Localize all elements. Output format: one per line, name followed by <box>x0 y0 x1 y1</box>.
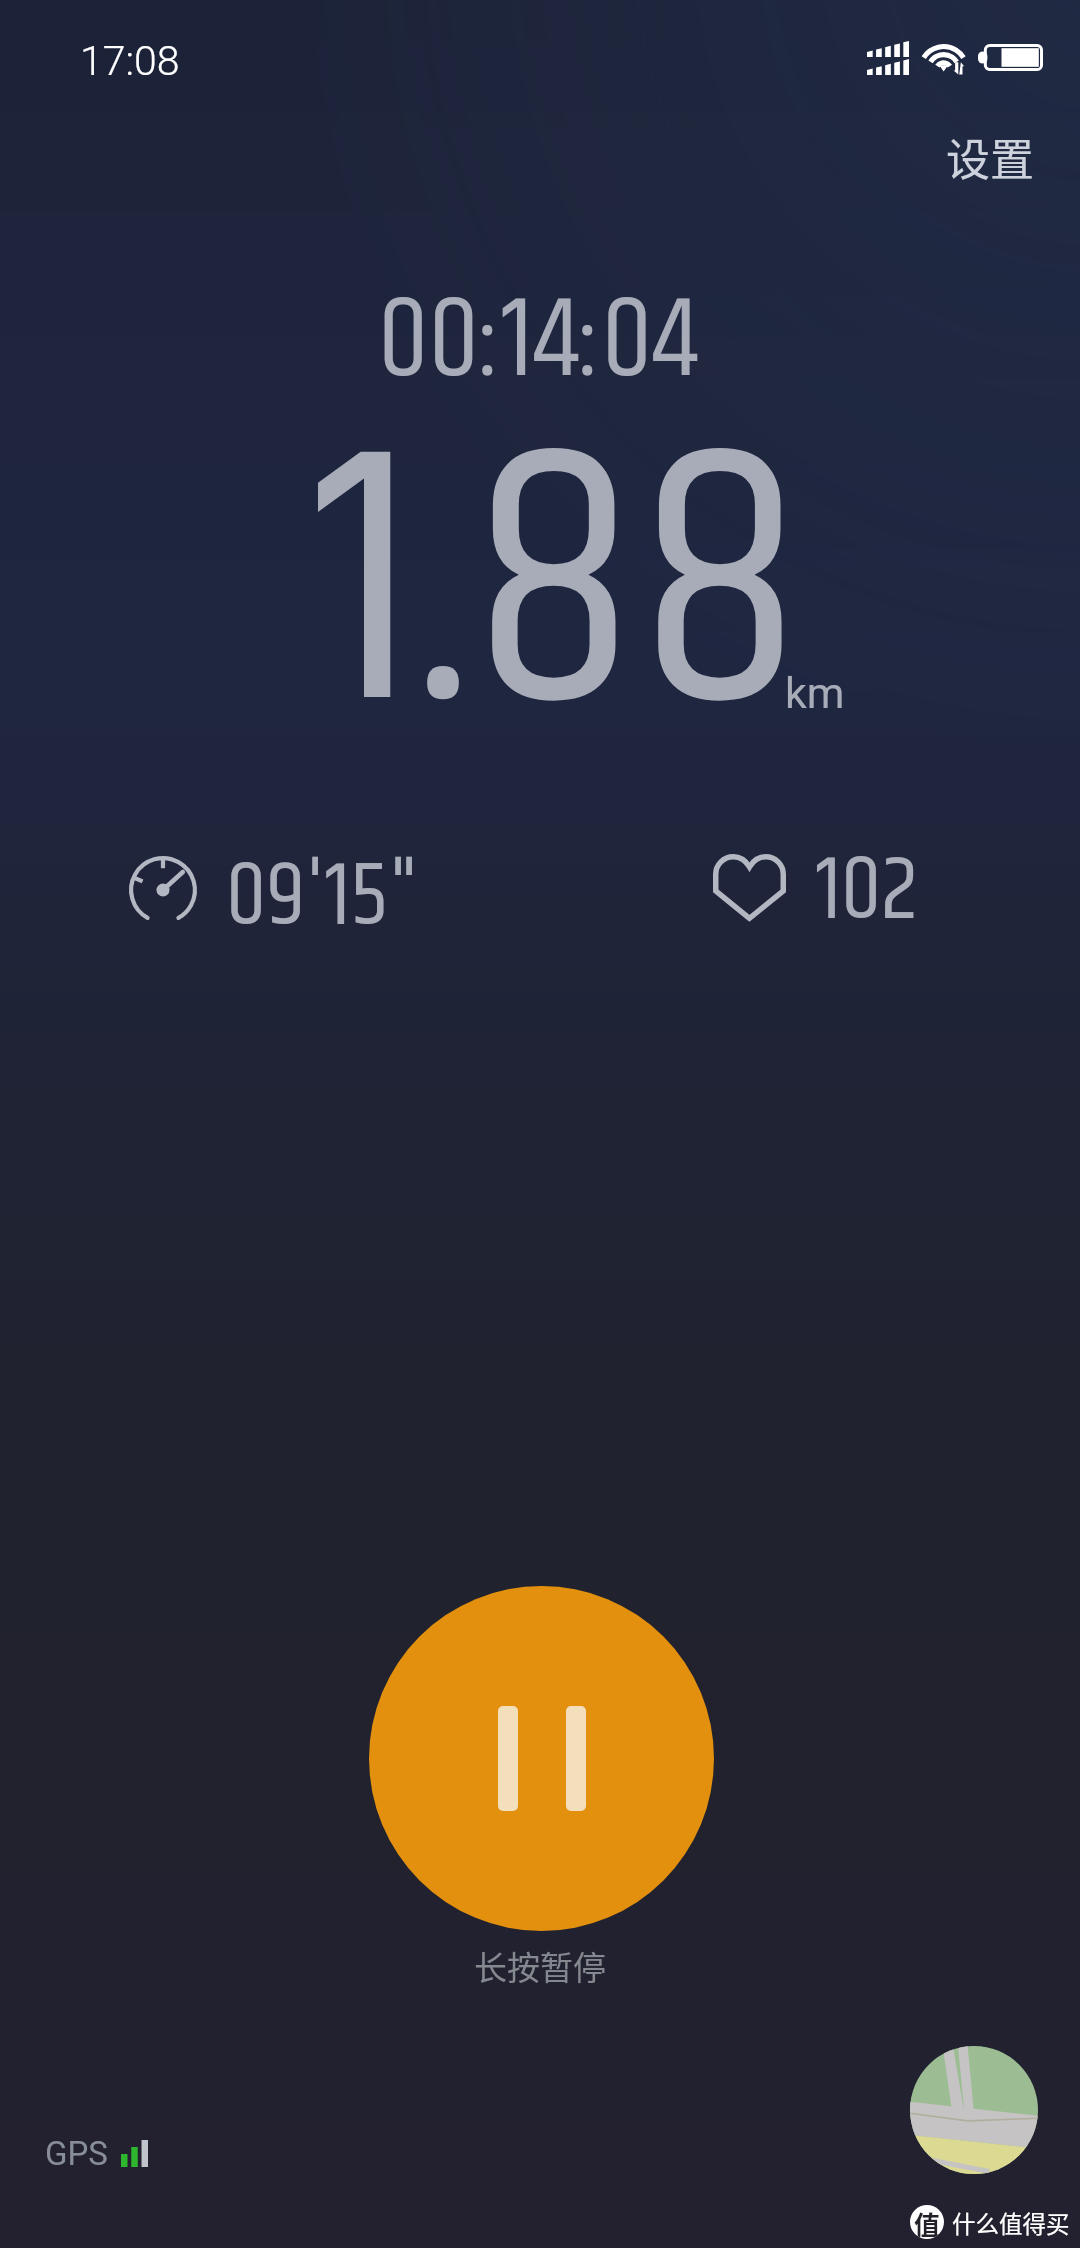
button[interactable]: Pause <box>369 1586 714 1931</box>
staticText: km <box>785 668 845 718</box>
staticText: 1.88 <box>314 314 803 872</box>
staticText: 设置 <box>946 125 1034 189</box>
staticText: 00:14:04 <box>378 256 698 429</box>
staticText: 102 <box>816 824 918 962</box>
button[interactable]: 设置 <box>906 115 1080 203</box>
staticText: 值 <box>914 2205 941 2239</box>
button[interactable]: Map <box>910 2046 1038 2174</box>
staticText: GPS <box>45 2134 108 2173</box>
staticText: 17:08 <box>80 37 180 85</box>
staticText: 什么值得买 <box>952 2206 1070 2240</box>
staticText: 长按暂停 <box>474 1942 606 1990</box>
staticText: 09'15" <box>226 830 420 968</box>
